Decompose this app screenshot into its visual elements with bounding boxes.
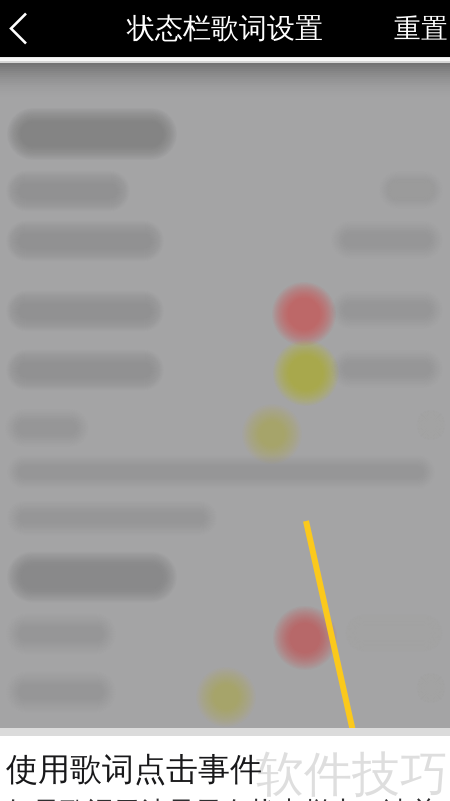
staticText: 使用歌词点击事件: [6, 750, 262, 789]
button[interactable]: 重置: [394, 3, 450, 53]
button[interactable]: 使用歌词点击事件: [0, 728, 450, 801]
staticText: 软件技巧: [256, 745, 448, 801]
staticText: 如果歌词无法显示在状态栏上，请关闭…: [6, 795, 438, 801]
staticText: 状态栏歌词设置: [127, 11, 323, 46]
button[interactable]: Back: [0, 3, 50, 53]
staticText: 重置: [394, 12, 448, 45]
